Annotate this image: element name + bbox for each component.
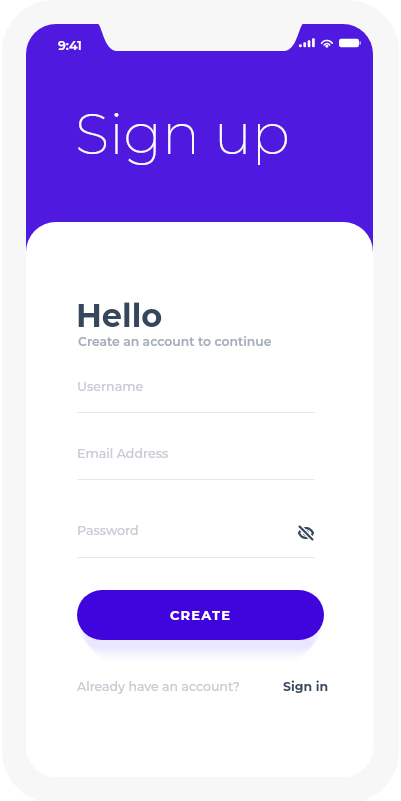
button[interactable]: Toggle password visibility (295, 522, 317, 544)
staticText: Username (77, 379, 144, 394)
staticText: Already have an account? (77, 679, 241, 694)
button[interactable]: CREATE (77, 590, 324, 640)
staticText: Create an account to continue (78, 334, 272, 349)
button[interactable]: Sign in (283, 679, 329, 694)
staticText: Hello (76, 296, 163, 335)
staticText: Email Address (77, 446, 169, 461)
staticText: Sign up (75, 99, 290, 168)
staticText: Password (77, 523, 139, 538)
staticText: 9:41 (58, 38, 82, 53)
staticText: CREATE (170, 607, 232, 623)
staticText: Sign in (283, 679, 329, 694)
